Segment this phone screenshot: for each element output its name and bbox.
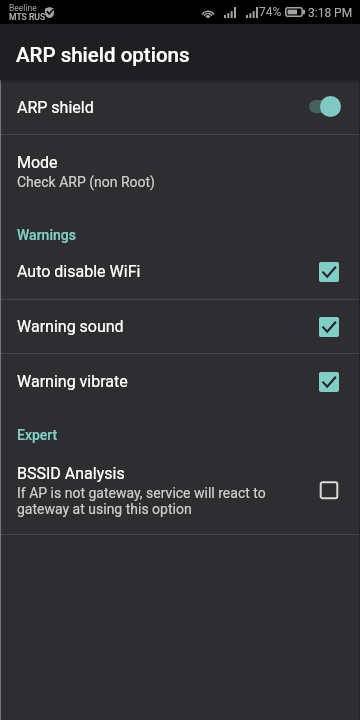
staticText: Warnings (17, 227, 76, 243)
staticText: Mode (17, 153, 58, 172)
button[interactable]: ARP shield (0, 80, 360, 134)
staticText: 74% (259, 5, 282, 19)
staticText: Expert (17, 427, 58, 443)
staticText: Check ARP (non Root) (17, 174, 155, 190)
staticText: Auto disable WiFi (17, 262, 319, 281)
button[interactable]: BSSID Analysis (0, 447, 360, 534)
button[interactable]: Mode (0, 135, 360, 205)
staticText: Warning sound (17, 317, 319, 336)
staticText: Beeline (9, 3, 37, 13)
other: Battery (285, 7, 305, 17)
staticText: 3:18 PM (308, 6, 353, 20)
other: Wi-Fi (201, 7, 215, 18)
staticText: MTS RUS (9, 12, 46, 22)
staticText: ARP shield options (16, 43, 190, 67)
staticText: ARP shield (17, 98, 305, 117)
staticText: Warning vibrate (17, 372, 319, 391)
button[interactable]: Auto disable WiFi (0, 244, 360, 299)
other: Secure network (45, 7, 54, 18)
button[interactable]: Warning sound (0, 300, 360, 353)
staticText: BSSID Analysis (17, 464, 125, 483)
staticText: If AP is not gateway, service will react… (17, 485, 307, 517)
button[interactable]: Warning vibrate (0, 354, 360, 409)
